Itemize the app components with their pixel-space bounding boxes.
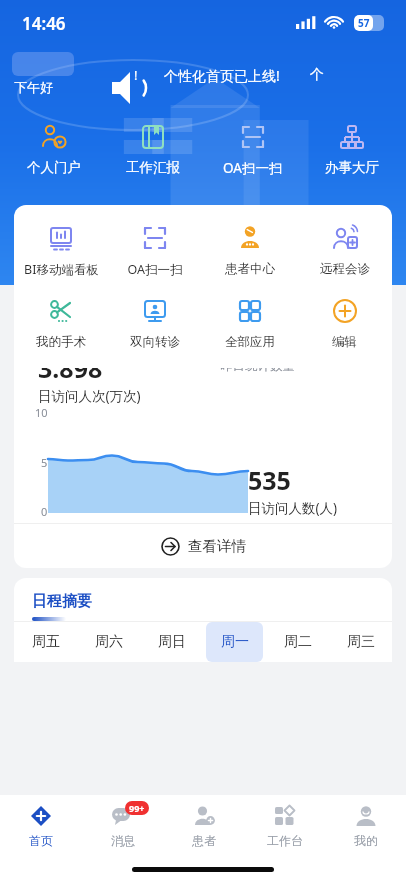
staticText: 周五: [32, 633, 60, 651]
button[interactable]: 远程会诊: [297, 221, 392, 279]
staticText: 首页: [29, 833, 53, 848]
button[interactable]: 周五: [17, 622, 74, 662]
button[interactable]: 周一: [206, 622, 263, 662]
button[interactable]: 99+: [82, 795, 163, 855]
button[interactable]: 公告: [108, 59, 324, 91]
staticText: 下午好: [14, 79, 53, 95]
staticText: 消息: [111, 833, 135, 848]
button[interactable]: 周二: [269, 622, 326, 662]
staticText: 患者: [192, 833, 216, 848]
staticText: *昨日统计数量: [213, 357, 295, 374]
button[interactable]: 查看详情: [14, 524, 392, 568]
button[interactable]: 首页: [0, 795, 82, 855]
button[interactable]: 编辑: [297, 294, 392, 352]
button[interactable]: 工作台: [244, 795, 325, 855]
button[interactable]: 办事大厅: [307, 120, 397, 178]
button[interactable]: BI移动端看板: [14, 221, 108, 280]
button[interactable]: 个人门户: [9, 120, 99, 178]
staticText: 我的: [354, 833, 378, 848]
staticText: 日程摘要: [32, 592, 92, 611]
staticText: 软件使用: [32, 307, 92, 326]
staticText: 个: [310, 66, 324, 84]
staticText: 99+: [129, 802, 145, 814]
staticText: 编辑: [332, 334, 357, 350]
staticText: 0: [41, 504, 48, 519]
staticText: 周三: [347, 633, 375, 651]
staticText: 535: [248, 463, 291, 497]
other: 公告: [108, 64, 130, 86]
staticText: 周日: [158, 633, 186, 651]
button[interactable]: 周六: [80, 622, 137, 662]
staticText: 工作台: [267, 833, 303, 848]
staticText: OA扫一扫: [127, 261, 183, 278]
staticText: 周二: [284, 633, 312, 651]
staticText: 患者中心: [225, 261, 275, 277]
button[interactable]: OA扫一扫: [208, 120, 298, 179]
button[interactable]: OA扫一扫: [108, 221, 202, 280]
staticText: !: [134, 66, 138, 84]
button[interactable]: 周三: [332, 622, 389, 662]
staticText: 57: [358, 16, 370, 30]
button[interactable]: 患者: [163, 795, 244, 855]
button[interactable]: 全部应用: [202, 294, 297, 352]
staticText: 14:46: [22, 12, 66, 35]
button[interactable]: 我的手术: [14, 294, 108, 352]
staticText: 双向转诊: [130, 334, 180, 350]
staticText: 日访问人数(人): [248, 499, 338, 517]
staticText: 周六: [95, 633, 123, 651]
staticText: BI移动端看板: [24, 261, 99, 278]
staticText: 我的手术: [36, 334, 86, 350]
staticText: 查看详情: [188, 537, 246, 555]
staticText: 周一: [221, 633, 249, 651]
staticText: 远程会诊: [320, 261, 370, 277]
staticText: 10: [35, 405, 48, 420]
button[interactable]: 我的: [325, 795, 406, 855]
staticText: 全部应用: [225, 334, 275, 350]
button[interactable]: 工作汇报: [108, 120, 198, 178]
button[interactable]: 周日: [143, 622, 200, 662]
staticText: OA扫一扫: [223, 159, 283, 177]
staticText: 工作汇报: [126, 159, 180, 176]
button[interactable]: 双向转诊: [108, 294, 202, 352]
button[interactable]: 患者中心: [202, 221, 297, 279]
staticText: 个人门户: [27, 159, 81, 176]
staticText: 3.898: [38, 351, 103, 385]
staticText: 日访问人次(万次): [38, 387, 141, 405]
staticText: 个性化首页已上线!: [164, 66, 280, 85]
staticText: 办事大厅: [325, 159, 379, 176]
staticText: 5: [41, 455, 48, 470]
